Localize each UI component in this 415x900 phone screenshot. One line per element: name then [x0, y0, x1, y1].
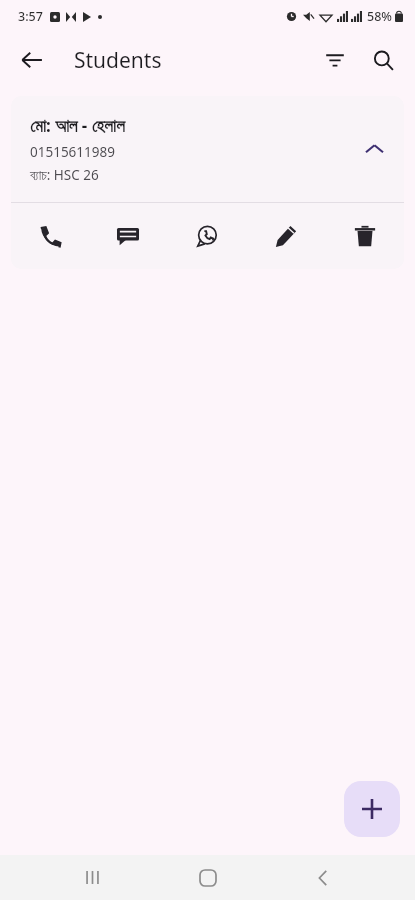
button[interactable]: Edit: [246, 203, 325, 269]
staticText: Students: [74, 46, 162, 75]
button[interactable]: Back: [300, 855, 346, 900]
staticText: 3:57: [18, 8, 43, 25]
staticText: 58%: [367, 8, 392, 25]
button[interactable]: Delete: [325, 203, 404, 269]
button[interactable]: Collapse: [352, 127, 396, 171]
button[interactable]: Recent apps: [69, 855, 115, 900]
button[interactable]: Search: [359, 36, 407, 84]
button[interactable]: Message: [89, 203, 167, 269]
button[interactable]: Back: [8, 36, 56, 84]
button[interactable]: Add student: [344, 781, 400, 837]
staticText: 01515611989: [30, 143, 115, 161]
staticText: মো: আল - হেলাল: [30, 114, 125, 137]
button[interactable]: Home: [185, 855, 231, 900]
staticText: ব্যাচ: HSC 26: [30, 166, 99, 184]
button[interactable]: WhatsApp: [167, 203, 246, 269]
button[interactable]: Call: [11, 203, 89, 269]
button[interactable]: মো: আল - হেলাল: [11, 96, 404, 202]
button[interactable]: Filter: [311, 36, 359, 84]
